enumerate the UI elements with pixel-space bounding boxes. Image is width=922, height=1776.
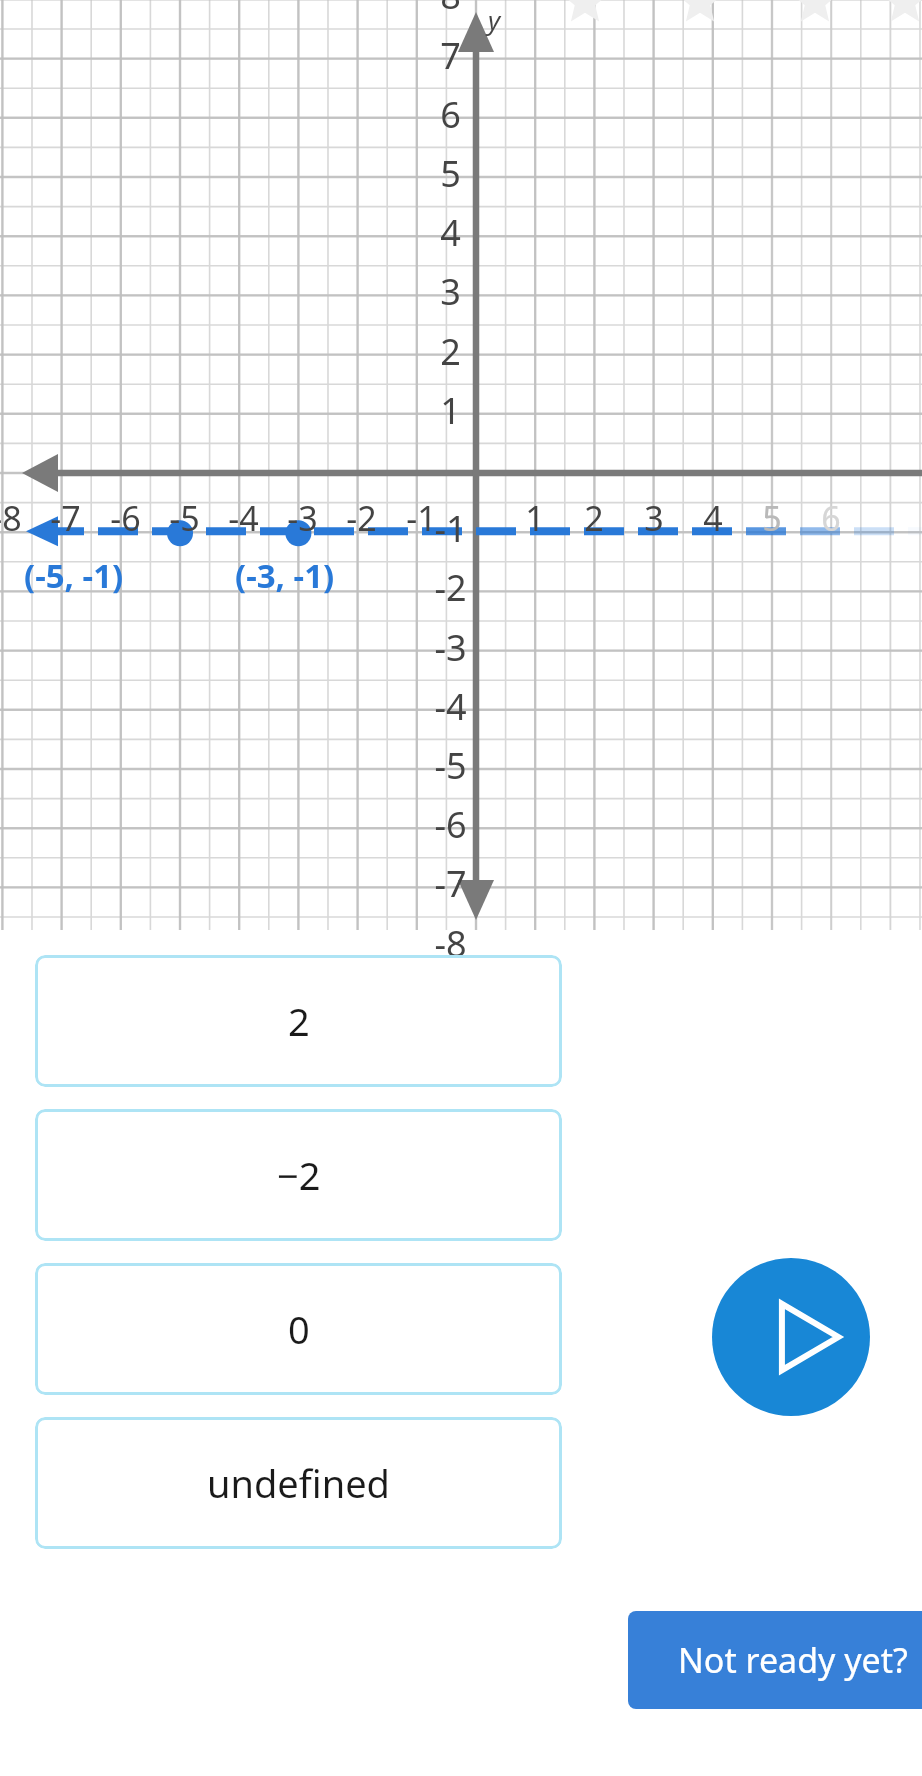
staticText: 6	[821, 495, 841, 541]
staticText: -7	[434, 859, 467, 908]
staticText: -2	[346, 495, 377, 541]
button[interactable]: −2	[35, 1109, 562, 1241]
staticText: 2	[584, 495, 604, 541]
staticText: 4	[703, 495, 723, 541]
button[interactable]: 0	[35, 1263, 562, 1395]
staticText: -5	[434, 741, 467, 790]
staticText: 8	[440, 0, 461, 20]
staticText: 2	[440, 327, 461, 376]
staticText: 6	[440, 90, 461, 139]
button[interactable]: 2	[35, 955, 562, 1087]
staticText: (-3, -1)	[235, 553, 335, 598]
staticText: 5	[762, 495, 782, 541]
staticText: 7	[440, 31, 461, 80]
staticText: -7	[50, 495, 81, 541]
staticText: 3	[644, 495, 664, 541]
staticText: 0	[288, 1303, 310, 1355]
staticText: 2	[288, 995, 310, 1047]
staticText: -1	[434, 504, 467, 553]
staticText: (-5, -1)	[24, 553, 124, 598]
staticText: -3	[287, 495, 318, 541]
staticText: -3	[434, 623, 467, 672]
staticText: y	[488, 2, 501, 37]
staticText: -8	[434, 919, 467, 968]
button[interactable]: Play	[712, 1258, 870, 1416]
staticText: -4	[228, 495, 259, 541]
staticText: -5	[169, 495, 200, 541]
staticText: 3	[440, 267, 461, 316]
staticText: 1	[525, 495, 545, 541]
staticText: -6	[110, 495, 141, 541]
staticText: 5	[440, 149, 461, 198]
button[interactable]: undefined	[35, 1417, 562, 1549]
staticText: -6	[434, 800, 467, 849]
staticText: -1	[406, 495, 437, 541]
staticText: -8	[0, 495, 22, 541]
staticText: 1	[440, 386, 461, 435]
button[interactable]: Not ready yet?	[628, 1611, 922, 1709]
staticText: -4	[434, 682, 467, 731]
staticText: 4	[440, 208, 461, 257]
staticText: undefined	[207, 1457, 390, 1509]
staticText: Not ready yet?	[678, 1637, 908, 1683]
staticText: −2	[277, 1149, 321, 1201]
staticText: -2	[434, 563, 467, 612]
